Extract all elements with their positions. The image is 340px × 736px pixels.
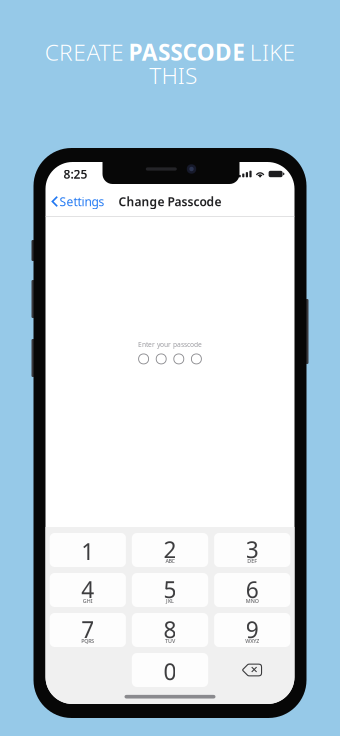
staticText: 4 xyxy=(81,574,94,604)
staticText: 2 xyxy=(163,534,176,564)
staticText: CREATE xyxy=(45,37,124,67)
staticText: 5 xyxy=(163,574,176,604)
staticText: DEF xyxy=(247,557,257,565)
button[interactable]: 4 xyxy=(50,573,126,607)
staticText: 8 xyxy=(163,614,176,644)
button[interactable]: 3 xyxy=(214,533,290,567)
staticText: 0 xyxy=(163,656,176,686)
button[interactable]: 6 xyxy=(214,573,290,607)
button[interactable]: 9 xyxy=(214,613,290,647)
staticText: JKL xyxy=(166,597,174,605)
button[interactable]: 2 xyxy=(132,533,208,567)
staticText: PQRS xyxy=(81,637,94,645)
staticText: 3 xyxy=(246,534,259,564)
button[interactable]: 5 xyxy=(132,573,208,607)
staticText: TUV xyxy=(165,637,175,645)
staticText: GHI xyxy=(83,597,93,605)
staticText: 9 xyxy=(246,614,259,644)
staticText: 1 xyxy=(81,536,94,566)
button[interactable]: 0 xyxy=(132,653,208,687)
button[interactable]: 7 xyxy=(50,613,126,647)
staticText: PASSCODE xyxy=(128,37,245,67)
staticText: Enter your passcode xyxy=(138,340,202,349)
staticText: WXYZ xyxy=(245,637,259,645)
staticText: 6 xyxy=(246,574,259,604)
button[interactable]: 1 xyxy=(50,533,126,567)
button[interactable]: 8 xyxy=(132,613,208,647)
staticText: Change Passcode xyxy=(118,193,221,209)
button[interactable]: Settings xyxy=(45,188,109,214)
staticText: ABC xyxy=(165,557,174,565)
button[interactable]: Delete xyxy=(214,653,290,687)
staticText: Settings xyxy=(59,193,104,209)
staticText: 7 xyxy=(81,614,94,644)
staticText: MNO xyxy=(246,597,259,605)
staticText: THIS xyxy=(149,60,197,90)
staticText: 8:25 xyxy=(63,166,87,182)
staticText: LIKE xyxy=(250,37,295,67)
